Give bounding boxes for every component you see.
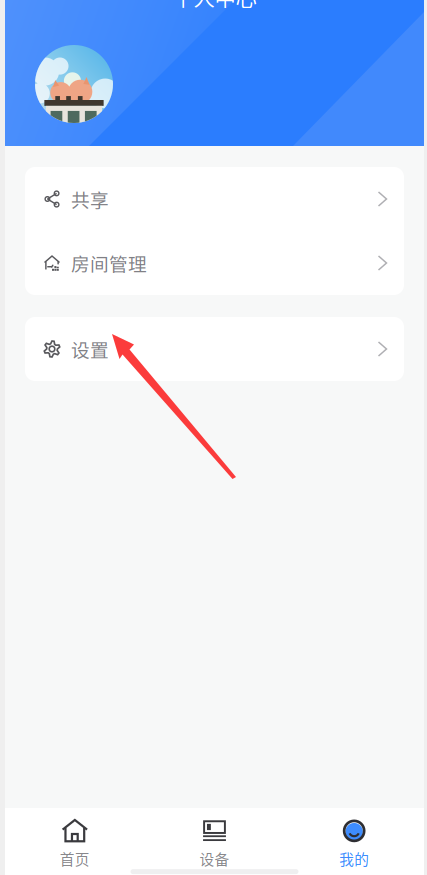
staticText: 我的	[339, 848, 369, 869]
staticText: 房间管理	[71, 249, 147, 276]
staticText: 设置	[71, 335, 109, 362]
staticText: 共享	[71, 185, 109, 212]
staticText: 首页	[60, 848, 90, 869]
button[interactable]: 共享	[25, 167, 404, 231]
button[interactable]: 设备	[145, 818, 284, 869]
button[interactable]: 首页	[5, 818, 145, 869]
button[interactable]: 房间管理	[25, 231, 404, 295]
button[interactable]: 设置	[25, 317, 404, 381]
staticText: 个人中心	[172, 0, 256, 12]
button[interactable]: 我的	[284, 818, 424, 869]
staticText: 设备	[199, 848, 229, 869]
